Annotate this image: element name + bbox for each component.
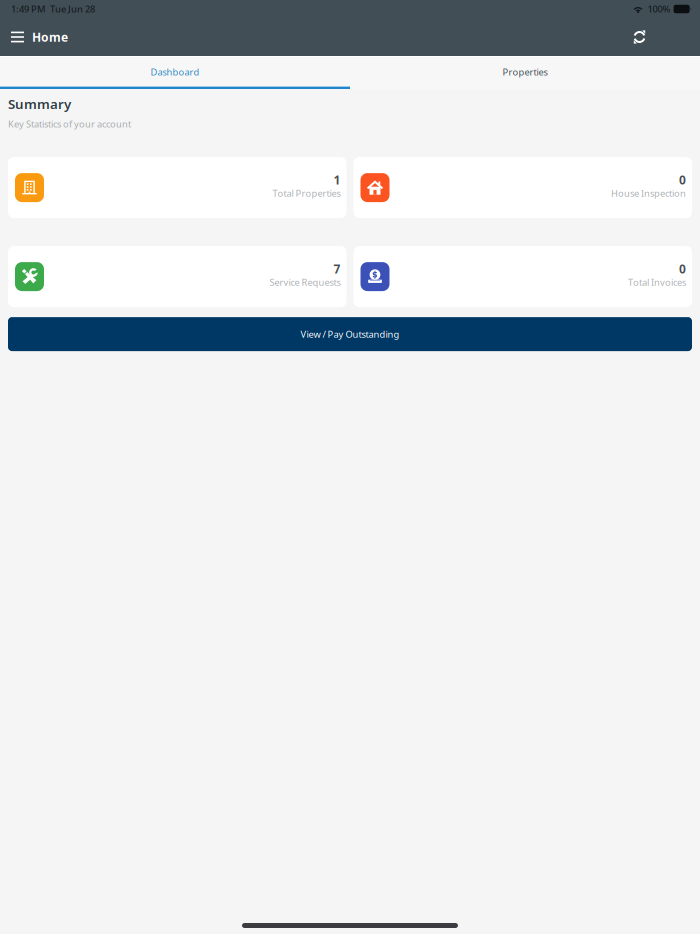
button[interactable]: 7 bbox=[8, 246, 346, 307]
staticText: Key Statistics of your account bbox=[8, 118, 131, 130]
staticText: Dashboard bbox=[150, 66, 199, 78]
staticText: 0 bbox=[679, 172, 686, 188]
staticText: Home bbox=[32, 29, 68, 45]
staticText: Tue Jun 28 bbox=[50, 3, 95, 15]
staticText: 100% bbox=[648, 3, 671, 15]
button[interactable]: 0 bbox=[353, 246, 692, 307]
staticText: 1:49 PM bbox=[11, 3, 46, 15]
button[interactable]: Dashboard bbox=[0, 57, 350, 89]
button[interactable]: 1 bbox=[8, 157, 346, 218]
button[interactable]: View / Pay Outstanding bbox=[8, 317, 692, 351]
staticText: Service Requests bbox=[269, 276, 340, 288]
button[interactable]: Properties bbox=[350, 57, 700, 89]
button[interactable]: 0 bbox=[353, 157, 692, 218]
staticText: View / Pay Outstanding bbox=[300, 328, 399, 340]
staticText: House Inspection bbox=[611, 187, 686, 199]
staticText: Total Properties bbox=[272, 187, 340, 199]
staticText: 0 bbox=[679, 261, 686, 277]
staticText: Properties bbox=[502, 66, 547, 78]
button[interactable]: Menu bbox=[0, 18, 32, 56]
staticText: 7 bbox=[333, 261, 340, 277]
staticText: Summary bbox=[8, 95, 71, 113]
staticText: 1 bbox=[333, 172, 340, 188]
button[interactable]: Refresh bbox=[619, 18, 700, 56]
staticText: Total Invoices bbox=[628, 276, 686, 288]
